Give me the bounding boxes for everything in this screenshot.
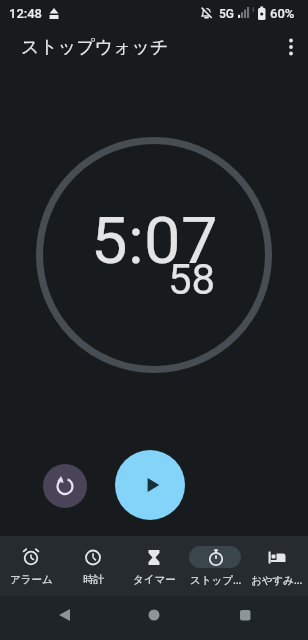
button[interactable] (43, 464, 87, 508)
staticText: 時計 (83, 573, 104, 586)
staticText: 58 (168, 255, 216, 304)
button[interactable]: ストップ... (185, 536, 247, 596)
staticText: ストップ... (190, 573, 242, 587)
staticText: 12:48 (9, 6, 43, 21)
button[interactable] (115, 450, 185, 520)
button[interactable]: おやすみ... (246, 536, 308, 596)
button[interactable]: 時計 (62, 536, 124, 596)
button[interactable]: タイマー (123, 536, 185, 596)
staticText: 60% (270, 6, 295, 21)
staticText: 5G (219, 7, 234, 21)
button[interactable]: アラーム (0, 536, 62, 596)
staticText: 5:07 (91, 203, 218, 279)
button[interactable] (279, 35, 303, 59)
staticText: おやすみ... (251, 573, 303, 587)
staticText: ストップウォッチ (21, 36, 169, 59)
staticText: アラーム (10, 573, 53, 586)
staticText: タイマー (133, 573, 176, 586)
